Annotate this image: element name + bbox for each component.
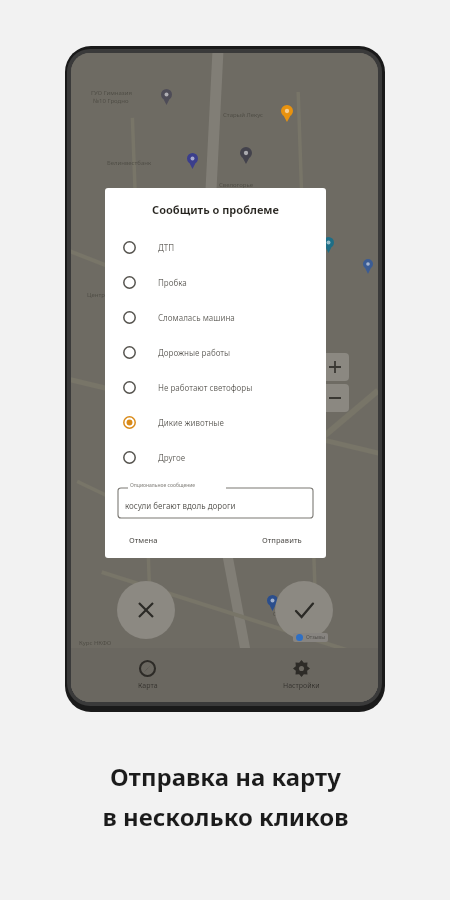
button[interactable]: Карта — [71, 648, 224, 702]
button[interactable]: Zoom in — [321, 353, 349, 381]
staticText: Отмена — [129, 535, 158, 545]
button[interactable]: Дорожные работы — [105, 335, 326, 370]
staticText: Дорожные работы — [158, 347, 231, 358]
staticText: Сообщить о проблеме — [105, 202, 326, 217]
staticText: ГУО Гимназия — [91, 89, 132, 97]
staticText: Сломалась машина — [158, 312, 235, 323]
staticText: Белинвестбанк — [107, 159, 152, 167]
staticText: Центр — [87, 291, 105, 299]
button[interactable]: Пробка — [105, 265, 326, 300]
staticText: Курс НКФО — [79, 639, 112, 647]
staticText: косули бегают вдоль дороги — [125, 500, 236, 511]
staticText: Отправка на карту — [110, 760, 341, 793]
button[interactable]: Отмена — [121, 532, 166, 548]
button[interactable]: Дикие животные — [105, 405, 326, 440]
staticText: Отправить — [262, 535, 302, 545]
staticText: Пробка — [158, 277, 187, 288]
staticText: Отзывы — [306, 634, 325, 641]
staticText: Настройки — [283, 681, 320, 691]
button[interactable]: Zoom out — [321, 384, 349, 412]
staticText: Опциональное сообщение — [130, 482, 196, 489]
staticText: Свелогорье — [219, 181, 253, 189]
staticText: Карта — [138, 681, 158, 691]
button[interactable]: Не работают светофоры — [105, 370, 326, 405]
staticText: Другое — [158, 452, 186, 463]
button[interactable]: Опциональное сообщение — [118, 483, 313, 518]
button[interactable]: ДТП — [105, 230, 326, 265]
button[interactable]: Другое — [105, 440, 326, 475]
staticText: №10 Гродно — [93, 97, 129, 105]
button[interactable]: Сломалась машина — [105, 300, 326, 335]
staticText: Салон цветов, срезка — [273, 611, 325, 618]
staticText: Дикие животные — [158, 417, 224, 428]
button[interactable]: Настройки — [224, 648, 378, 702]
staticText: в несколько кликов — [102, 800, 349, 833]
staticText: Не работают светофоры — [158, 382, 253, 393]
staticText: Старый Лекус — [223, 111, 263, 119]
staticText: ДТП — [158, 242, 175, 253]
button[interactable]: Отправить — [254, 532, 310, 548]
button[interactable]: Confirm report — [275, 581, 333, 639]
button[interactable]: Cancel report — [117, 581, 175, 639]
